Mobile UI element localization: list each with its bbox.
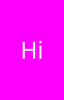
staticText: Hi <box>20 35 43 65</box>
